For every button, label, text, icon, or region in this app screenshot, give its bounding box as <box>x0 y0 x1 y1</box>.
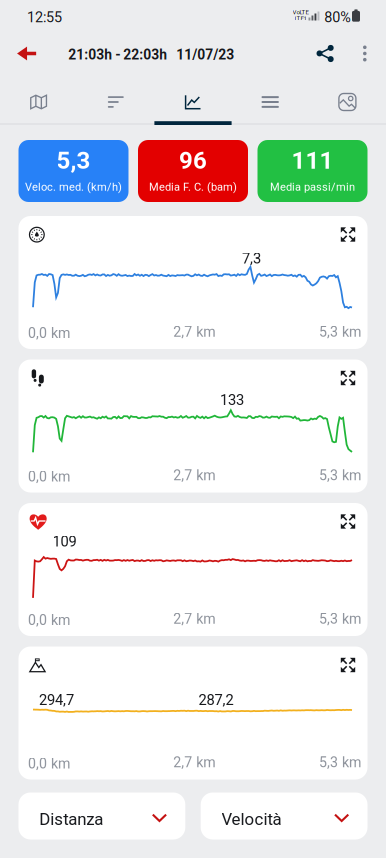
staticText: 5,3 km <box>319 324 361 340</box>
staticText: 21:03h - 22:03h 11/07/23 <box>68 47 234 63</box>
staticText: 111 <box>291 146 333 174</box>
button[interactable]: Velocità <box>201 792 367 839</box>
button[interactable]: Expand cadence chart <box>340 370 355 385</box>
button[interactable]: Laps <box>232 78 309 126</box>
staticText: 0,0 km <box>28 325 70 341</box>
button[interactable]: More options <box>346 33 384 73</box>
staticText: LTE1 <box>294 15 306 22</box>
staticText: 2,7 km <box>173 754 215 771</box>
staticText: Velocità <box>221 809 281 829</box>
staticText: 5,3 km <box>319 754 361 771</box>
staticText: 12:55 <box>27 9 62 26</box>
staticText: 96 <box>179 146 207 174</box>
staticText: 0,0 km <box>28 755 70 772</box>
staticText: 5,3 km <box>319 467 361 484</box>
staticText: 133 <box>220 391 244 409</box>
staticText: Veloc. med. (km/h) <box>25 180 122 193</box>
button[interactable]: Charts <box>154 78 232 126</box>
staticText: 80% <box>324 9 351 26</box>
button[interactable]: Expand speed chart <box>340 227 355 242</box>
button[interactable]: Summary <box>77 78 154 126</box>
staticText: 5,3 km <box>319 611 361 627</box>
staticText: 294,7 <box>39 691 74 709</box>
staticText: 2,7 km <box>173 611 215 627</box>
staticText: 7,3 <box>242 250 261 267</box>
button[interactable]: 5,3 <box>18 140 128 202</box>
staticText: 287,2 <box>198 691 233 709</box>
staticText: 0,0 km <box>28 612 70 628</box>
button[interactable]: Expand heart rate chart <box>340 514 355 529</box>
button[interactable]: Expand elevation chart <box>340 657 355 672</box>
button[interactable]: Distanza <box>18 792 185 839</box>
staticText: 2,7 km <box>173 324 215 340</box>
staticText: Media F. C. (bam) <box>149 180 237 193</box>
staticText: Media passi/min <box>270 180 355 193</box>
button[interactable]: Map <box>0 78 77 126</box>
staticText: 109 <box>52 533 76 550</box>
staticText: 0,0 km <box>28 468 70 485</box>
button[interactable]: Photos <box>309 78 386 126</box>
staticText: 2,7 km <box>173 467 215 484</box>
button[interactable]: Back <box>6 33 46 73</box>
staticText: VoLTE <box>292 8 308 16</box>
button[interactable]: 96 <box>138 140 248 202</box>
button[interactable]: Share <box>305 33 345 73</box>
staticText: 5,3 <box>56 146 90 174</box>
button[interactable]: 111 <box>257 140 367 202</box>
staticText: Distanza <box>39 809 103 829</box>
